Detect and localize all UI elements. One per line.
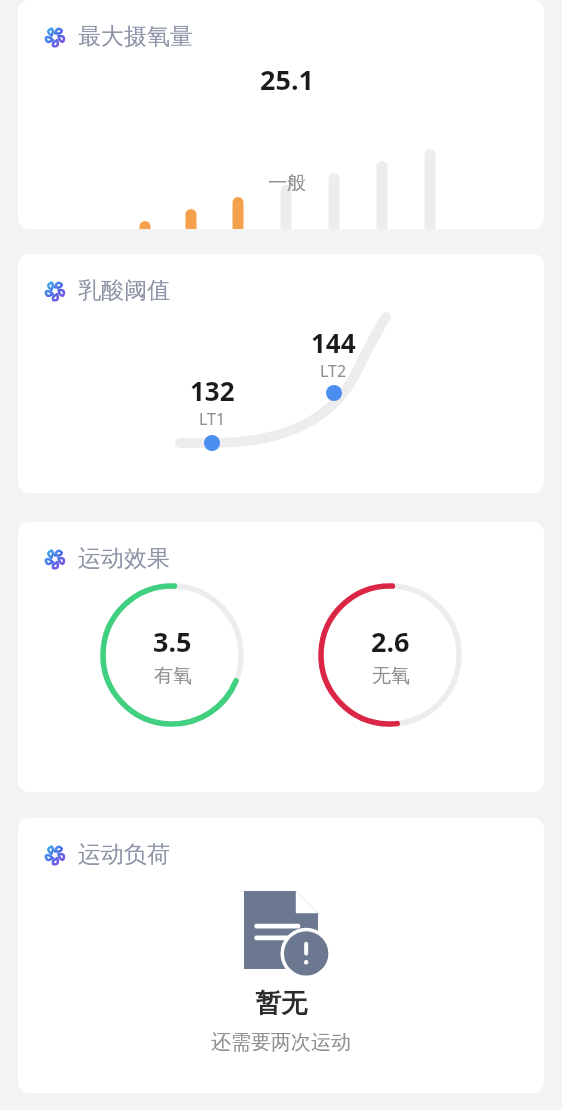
- staticText: 25.1: [260, 61, 314, 98]
- button[interactable]: 乳酸阈值: [18, 254, 544, 305]
- staticText: 运动效果: [78, 544, 170, 573]
- button[interactable]: 运动负荷: [18, 818, 544, 1093]
- other: No data: [18, 887, 544, 973]
- staticText: 有氧: [154, 664, 192, 688]
- staticText: 一般: [268, 171, 306, 195]
- button[interactable]: 最大摄氧量: [18, 0, 544, 51]
- staticText: 2.6: [371, 623, 410, 660]
- button[interactable]: 运动负荷: [18, 818, 544, 869]
- button[interactable]: 运动效果: [18, 522, 544, 573]
- staticText: 132: [190, 373, 235, 408]
- staticText: 最大摄氧量: [78, 22, 193, 51]
- staticText: 无氧: [372, 664, 410, 688]
- staticText: LT1: [199, 408, 226, 430]
- button[interactable]: 2.6: [318, 583, 462, 727]
- button[interactable]: 乳酸阈值: [18, 254, 544, 493]
- button[interactable]: 3.5: [100, 583, 244, 727]
- staticText: 还需要两次运动: [18, 1030, 544, 1055]
- staticText: 3.5: [153, 623, 192, 660]
- button[interactable]: 运动效果: [18, 522, 544, 792]
- staticText: LT2: [320, 360, 347, 382]
- staticText: 运动负荷: [78, 840, 170, 869]
- button[interactable]: 最大摄氧量: [18, 0, 544, 229]
- staticText: 144: [311, 325, 356, 360]
- staticText: 乳酸阈值: [78, 276, 170, 305]
- staticText: 暂无: [18, 987, 544, 1020]
